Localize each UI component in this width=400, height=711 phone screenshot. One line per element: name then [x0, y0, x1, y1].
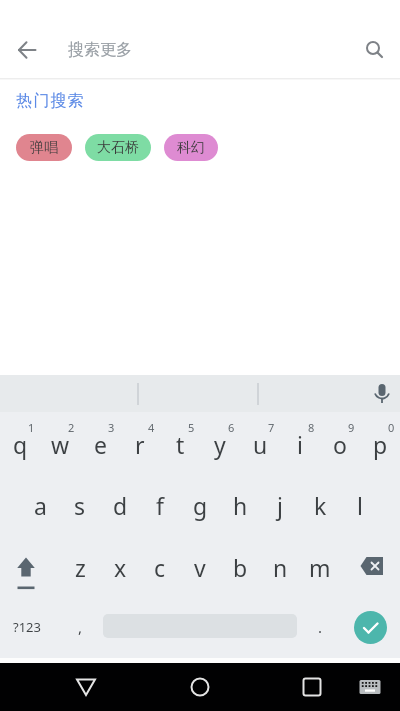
button[interactable]: c [140, 534, 180, 596]
button[interactable]: g [180, 473, 220, 534]
button[interactable] [62, 663, 110, 711]
staticText: 4 [148, 420, 155, 435]
staticText: . [318, 617, 323, 637]
button[interactable]: b [220, 534, 260, 596]
button[interactable]: i [280, 412, 320, 473]
staticText: k [314, 490, 327, 521]
staticText: 大石桥 [97, 139, 139, 157]
staticText: y [214, 429, 226, 460]
button[interactable]: . [300, 596, 340, 658]
staticText: c [154, 552, 166, 583]
button[interactable]: w [40, 412, 80, 473]
button[interactable]: q [0, 412, 40, 473]
button[interactable]: k [300, 473, 340, 534]
button[interactable]: t [160, 412, 200, 473]
staticText: b [233, 552, 248, 583]
button[interactable]: h [220, 473, 260, 534]
button[interactable] [354, 611, 387, 644]
staticText: h [233, 490, 248, 521]
button[interactable]: 科幻 [164, 134, 218, 161]
staticText: x [114, 552, 127, 583]
button[interactable]: u [240, 412, 280, 473]
button[interactable]: ?123 [0, 596, 60, 658]
staticText: p [373, 429, 388, 460]
button[interactable] [288, 663, 336, 711]
staticText: 6 [228, 420, 235, 435]
staticText: 科幻 [177, 139, 205, 157]
staticText: q [13, 429, 28, 460]
staticText: z [75, 552, 86, 583]
staticText: v [194, 552, 206, 583]
staticText: r [135, 429, 145, 460]
staticText: , [78, 617, 83, 637]
staticText: a [34, 490, 47, 521]
button[interactable]: 大石桥 [85, 134, 151, 161]
staticText: l [357, 490, 363, 521]
staticText: w [51, 429, 70, 460]
staticText: o [333, 429, 347, 460]
staticText: 1 [28, 420, 35, 435]
button[interactable]: x [100, 534, 140, 596]
staticText: 7 [268, 420, 275, 435]
staticText: 8 [308, 420, 315, 435]
staticText: 0 [388, 420, 395, 435]
button[interactable] [0, 534, 60, 596]
staticText: t [176, 429, 185, 460]
staticText: j [277, 490, 283, 521]
staticText: 2 [68, 420, 75, 435]
staticText: ?123 [13, 618, 41, 636]
staticText: 5 [188, 420, 195, 435]
staticText: f [156, 490, 164, 521]
button[interactable]: l [340, 473, 380, 534]
staticText: n [273, 552, 288, 583]
button[interactable]: s [60, 473, 100, 534]
button[interactable]: o [320, 412, 360, 473]
staticText: 3 [108, 420, 115, 435]
staticText: i [297, 429, 303, 460]
button[interactable] [364, 375, 400, 412]
staticText: 热门搜索 [16, 91, 85, 111]
staticText: e [94, 429, 107, 460]
button[interactable]: z [60, 534, 100, 596]
staticText: g [193, 490, 208, 521]
button[interactable]: j [260, 473, 300, 534]
button[interactable]: f [140, 473, 180, 534]
button[interactable]: n [260, 534, 300, 596]
button[interactable] [350, 22, 400, 78]
button[interactable]: p [360, 412, 400, 473]
button[interactable] [340, 534, 400, 596]
staticText: u [253, 429, 268, 460]
button[interactable]: y [200, 412, 240, 473]
staticText: 搜索更多 [68, 40, 132, 60]
button[interactable]: m [300, 534, 340, 596]
button[interactable]: e [80, 412, 120, 473]
button[interactable] [0, 22, 56, 78]
staticText: m [309, 552, 331, 583]
button[interactable] [176, 663, 224, 711]
button[interactable]: , [60, 596, 100, 658]
staticText: s [74, 490, 86, 521]
button[interactable]: r [120, 412, 160, 473]
button[interactable] [346, 663, 394, 711]
button[interactable]: a [20, 473, 60, 534]
button[interactable]: d [100, 473, 140, 534]
staticText: 9 [348, 420, 355, 435]
button[interactable]: 弹唱 [16, 134, 72, 161]
staticText: 弹唱 [30, 139, 58, 157]
button[interactable]: v [180, 534, 220, 596]
staticText: d [113, 490, 128, 521]
